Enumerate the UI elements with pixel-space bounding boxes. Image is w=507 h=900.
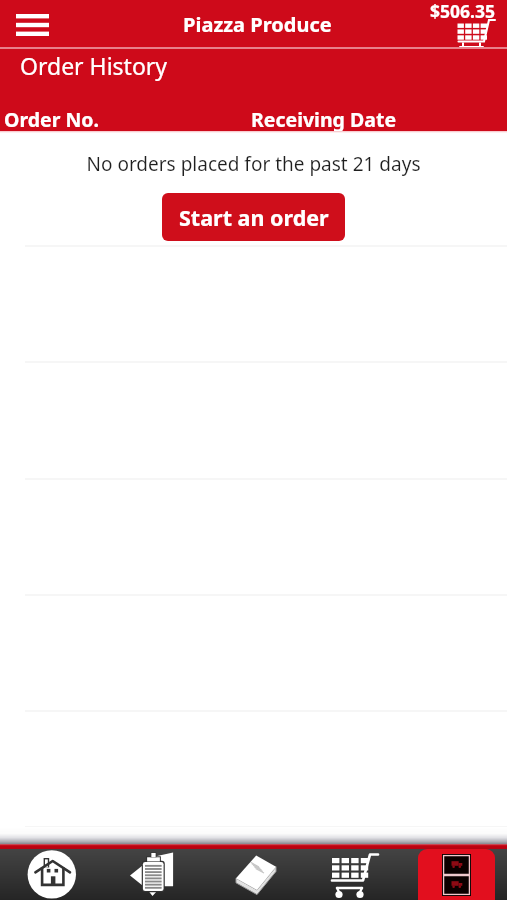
staticText: Order History [20,50,168,81]
button[interactable]: Order guide [102,849,204,900]
staticText: Order No. [4,106,100,133]
button[interactable]: Menu [5,0,59,48]
button[interactable]: Order history [418,849,495,900]
button[interactable]: Start an order [162,193,345,241]
button[interactable]: Home [0,849,102,900]
button[interactable]: Catalog [204,849,305,900]
staticText: Piazza Produce [183,11,332,38]
staticText: $506.35 [430,0,495,23]
staticText: Receiving Date [251,106,397,133]
staticText: Start an order [179,203,329,232]
button[interactable]: Cart [425,0,507,48]
staticText: No orders placed for the past 21 days [0,151,507,177]
button[interactable]: Cart [305,849,406,900]
